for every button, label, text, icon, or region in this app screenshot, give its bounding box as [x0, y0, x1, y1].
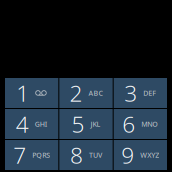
staticText: WXYZ	[140, 150, 159, 160]
staticText: 7	[13, 139, 26, 170]
button[interactable]: 9	[114, 140, 167, 170]
button[interactable]: 3	[114, 78, 167, 108]
button[interactable]: 1	[5, 78, 58, 108]
button[interactable]: 4	[5, 109, 58, 139]
staticText: 5	[71, 108, 84, 139]
staticText: PQRS	[32, 150, 50, 160]
button[interactable]: 6	[114, 109, 167, 139]
staticText: 3	[124, 77, 137, 108]
staticText: 4	[16, 108, 29, 139]
staticText: 2	[69, 77, 82, 108]
staticText: MNO	[141, 119, 158, 129]
staticText: 1	[16, 77, 29, 108]
staticText: GHI	[35, 119, 48, 129]
staticText: ABC	[88, 88, 102, 98]
staticText: 6	[122, 108, 135, 139]
button[interactable]: 7	[5, 140, 58, 170]
button[interactable]: 2	[59, 78, 113, 108]
staticText: JKL	[90, 119, 100, 129]
staticText: 8	[70, 139, 83, 170]
staticText: 9	[121, 139, 134, 170]
button[interactable]: 5	[59, 109, 113, 139]
staticText: TUV	[89, 150, 102, 160]
button[interactable]: 8	[59, 140, 113, 170]
staticText: DEF	[143, 88, 156, 98]
